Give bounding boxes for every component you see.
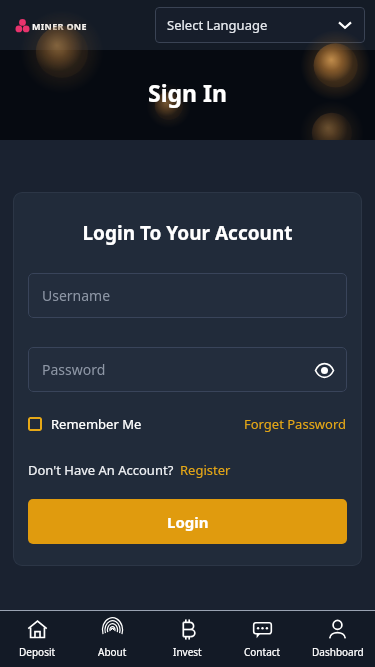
staticText: Deposit bbox=[19, 645, 56, 659]
button[interactable]: Register bbox=[180, 459, 231, 481]
staticText: Invest bbox=[173, 645, 202, 659]
button[interactable]: Select Language bbox=[155, 7, 365, 43]
staticText: Contact bbox=[244, 645, 281, 659]
staticText: About bbox=[98, 645, 127, 659]
button[interactable]: Show password bbox=[309, 355, 339, 385]
staticText: MINER ONE bbox=[32, 20, 87, 32]
staticText: Login To Your Account bbox=[28, 220, 347, 246]
staticText: Remember Me bbox=[51, 415, 142, 433]
button[interactable]: Invest bbox=[150, 611, 225, 667]
button[interactable]: Deposit bbox=[0, 611, 75, 667]
button[interactable]: Remember Me bbox=[28, 412, 142, 436]
button[interactable]: Username bbox=[28, 273, 347, 318]
staticText: Login bbox=[167, 512, 209, 532]
button[interactable]: About bbox=[75, 611, 150, 667]
staticText: Sign In bbox=[148, 77, 227, 108]
button[interactable]: Forget Password bbox=[244, 412, 347, 436]
staticText: Select Language bbox=[167, 16, 268, 34]
button[interactable]: Dashboard bbox=[300, 611, 375, 667]
button[interactable]: Password bbox=[28, 347, 347, 392]
button[interactable]: Login bbox=[28, 499, 347, 544]
staticText: Username bbox=[42, 286, 111, 305]
staticText: Forget Password bbox=[244, 415, 347, 433]
staticText: Don't Have An Account? bbox=[28, 461, 174, 479]
staticText: Dashboard bbox=[312, 645, 364, 659]
button[interactable]: MINER ONE bbox=[14, 17, 89, 34]
staticText: Password bbox=[42, 360, 106, 379]
staticText: Register bbox=[180, 461, 231, 479]
button[interactable]: Contact bbox=[225, 611, 300, 667]
